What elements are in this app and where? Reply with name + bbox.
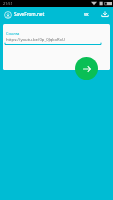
staticText: 21:51 [3, 1, 13, 6]
button[interactable]: App icon [4, 11, 12, 19]
button[interactable]: Download [75, 57, 98, 80]
staticText: VK [84, 12, 89, 17]
staticText: https://youtu.be/0p_0JqkoRxU [6, 37, 65, 43]
button[interactable]: VK [81, 9, 92, 20]
staticText: SaveFrom.net [14, 11, 45, 17]
button[interactable]: Downloads [100, 9, 110, 19]
staticText: Ссылка [6, 31, 20, 36]
